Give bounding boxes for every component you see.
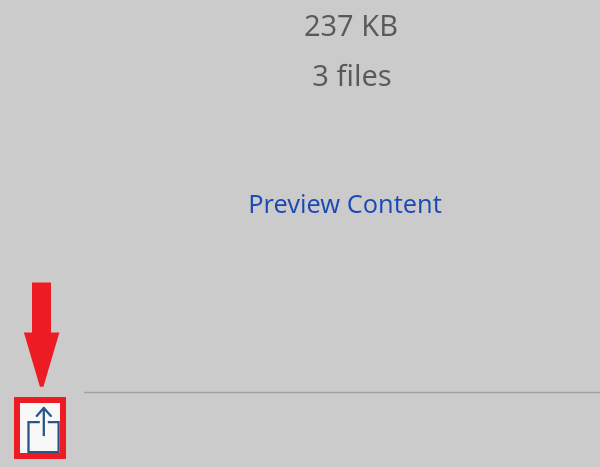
staticText: Preview Content xyxy=(245,186,445,220)
staticText: 3 files xyxy=(252,55,452,91)
button[interactable]: Preview Content xyxy=(245,186,445,220)
staticText: 237 KB xyxy=(251,5,451,41)
button[interactable]: Share xyxy=(20,403,60,453)
